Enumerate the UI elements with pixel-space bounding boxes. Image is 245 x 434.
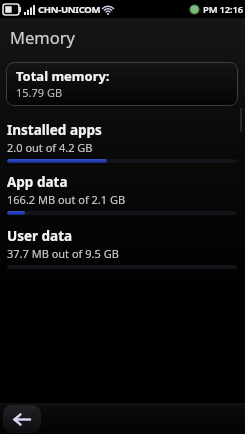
staticText: 37.7 MB out of 9.5 GB xyxy=(7,246,119,261)
staticText: App data xyxy=(7,173,68,191)
staticText: Total memory: xyxy=(16,67,110,85)
staticText: 2.0 out of 4.2 GB xyxy=(7,140,93,155)
button[interactable]: App data xyxy=(0,173,245,191)
button[interactable]: User data xyxy=(0,227,245,245)
button[interactable]: Total memory: xyxy=(6,62,238,106)
staticText: PM 12:16 xyxy=(203,3,243,16)
staticText: 15.79 GB xyxy=(16,85,63,100)
staticText: Memory xyxy=(10,26,75,48)
staticText: 166.2 MB out of 2.1 GB xyxy=(7,192,126,207)
button[interactable] xyxy=(3,405,41,433)
staticText: User data xyxy=(7,227,73,245)
button[interactable]: Installed apps xyxy=(0,121,245,139)
staticText: Installed apps xyxy=(7,121,102,139)
staticText: CHN-UNICOM xyxy=(38,3,101,16)
